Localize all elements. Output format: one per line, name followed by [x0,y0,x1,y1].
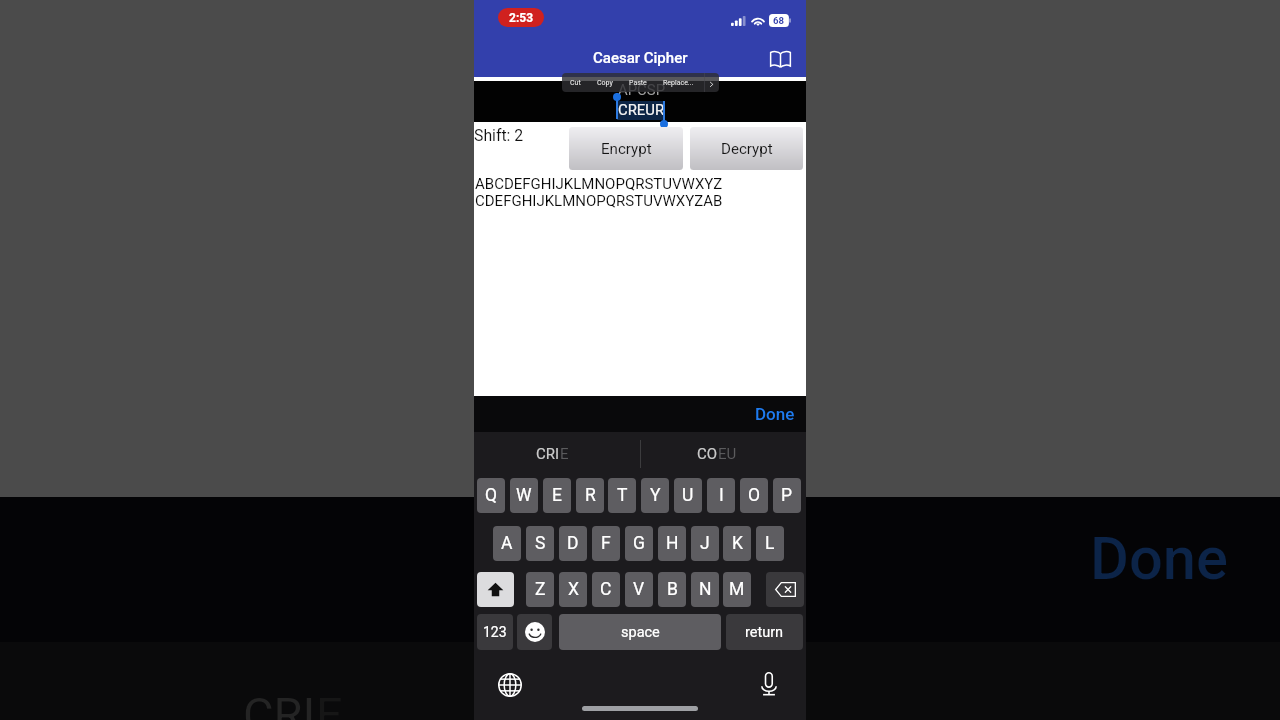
staticText: ABCDEFGHIJKLMNOPQRSTUVWXYZ [475,175,723,193]
staticText: B [667,579,678,600]
staticText: Y [650,485,661,506]
staticText: E [552,485,562,506]
staticText: V [633,579,645,600]
staticText: Z [535,579,546,600]
staticText: 2:53 [509,11,534,25]
staticText: R [585,485,596,506]
staticText: Shift: 2 [474,126,524,145]
staticText: space [621,624,660,641]
button[interactable]: S [526,526,554,561]
button[interactable]: W [510,478,538,513]
staticText: F [601,533,611,554]
button[interactable]: H [658,526,686,561]
staticText: Paste [629,79,647,87]
button[interactable]: O [740,478,768,513]
staticText: 68 [773,15,785,26]
button[interactable]: Dictation [757,672,781,696]
button[interactable]: CO [675,441,759,467]
button[interactable]: Copy [597,73,613,92]
button[interactable]: D [559,526,587,561]
staticText: Done [1090,524,1228,594]
staticText: return [745,624,784,641]
button[interactable]: M [723,572,751,607]
button[interactable]: Dictionary [765,46,795,72]
button[interactable]: X [559,572,587,607]
button[interactable]: Change keyboard [498,673,522,697]
button[interactable]: R [576,478,604,513]
button[interactable]: A [493,526,521,561]
button[interactable]: T [608,478,636,513]
staticText: O [748,485,761,506]
button[interactable]: Replace... [663,73,694,92]
button[interactable]: J [691,526,719,561]
button[interactable]: Done [755,404,795,424]
staticText: CREUR [618,101,665,118]
button[interactable]: space [559,614,721,650]
staticText: X [568,579,579,600]
button[interactable]: Shift [477,572,514,607]
button[interactable]: Encrypt [569,127,683,170]
button[interactable]: G [625,526,653,561]
staticText: J [700,533,710,554]
button[interactable]: L [756,526,784,561]
button[interactable]: Z [526,572,554,607]
button[interactable]: return [726,614,803,650]
button[interactable]: Q [477,478,505,513]
staticText: C [600,579,612,600]
button[interactable]: Backspace [766,572,804,607]
staticText: I [719,485,724,506]
staticText: E [316,687,343,720]
staticText: Replace... [663,79,694,87]
button[interactable]: C [592,572,620,607]
staticText: Encrypt [601,140,652,158]
staticText: H [666,533,679,554]
staticText: Done [755,404,795,424]
staticText: Caesar Cipher [593,49,688,67]
button[interactable]: Paste [629,73,647,92]
button[interactable]: CRI [510,441,594,467]
button[interactable]: E [543,478,571,513]
staticText: EU [718,445,737,463]
button[interactable]: P [773,478,801,513]
button[interactable]: F [592,526,620,561]
staticText: E [560,445,569,463]
button[interactable]: V [625,572,653,607]
staticText: CRI [536,445,560,463]
button[interactable]: Emoji [517,614,552,650]
staticText: Decrypt [721,140,773,158]
staticText: CO [697,445,718,463]
staticText: M [729,579,745,600]
staticText: W [516,485,532,506]
staticText: N [699,579,712,600]
staticText: S [535,533,546,554]
staticText: APCSP [618,81,666,98]
staticText: Q [485,485,498,506]
staticText: A [501,533,513,554]
button[interactable]: Decrypt [690,127,803,170]
staticText: P [781,485,793,506]
button[interactable]: N [691,572,719,607]
staticText: L [765,533,775,554]
staticText: Copy [597,79,613,87]
button[interactable]: More [704,73,719,92]
staticText: G [633,533,645,554]
button[interactable]: I [707,478,735,513]
staticText: D [567,533,579,554]
button[interactable]: 123 [477,614,513,650]
staticText: K [732,533,743,554]
staticText: Cut [570,79,581,87]
staticText: CDEFGHIJKLMNOPQRSTUVWXYZAB [475,192,723,210]
button[interactable]: B [658,572,686,607]
button[interactable]: Cut [570,73,581,92]
staticText: CRI [243,687,316,720]
staticText: 123 [483,624,507,640]
button[interactable]: K [723,526,751,561]
staticText: U [682,485,694,506]
staticText: T [617,485,628,506]
button[interactable]: Y [641,478,669,513]
button[interactable]: U [674,478,702,513]
